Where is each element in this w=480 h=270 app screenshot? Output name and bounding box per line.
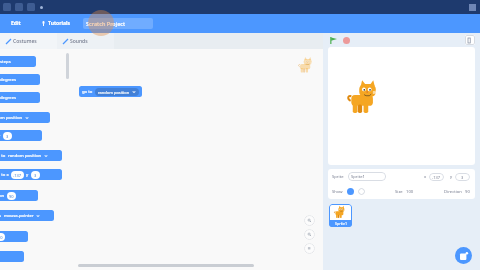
button[interactable]: Edit bbox=[8, 17, 24, 30]
staticText: steps bbox=[0, 59, 11, 65]
button[interactable]: wards bbox=[0, 210, 54, 221]
staticText: Scratch Project bbox=[86, 20, 126, 27]
staticText: random position bbox=[8, 153, 42, 159]
staticText: random position bbox=[0, 115, 23, 121]
staticText: go to bbox=[82, 89, 93, 95]
staticText: Tutorials bbox=[48, 20, 70, 27]
staticText: Sprite bbox=[332, 174, 344, 180]
button[interactable]: Stop bbox=[343, 37, 350, 44]
button[interactable]: -137 bbox=[0, 251, 24, 262]
staticText: Edit bbox=[11, 20, 21, 27]
staticText: irection bbox=[0, 193, 5, 199]
button[interactable]: 15 bbox=[0, 92, 40, 103]
button[interactable]: Tool 1 bbox=[15, 3, 23, 11]
button[interactable]: ove to bbox=[0, 150, 62, 161]
staticText: degrees bbox=[0, 95, 17, 101]
button[interactable]: Reset zoom bbox=[304, 243, 315, 254]
button[interactable]: Hide sprite bbox=[358, 188, 365, 195]
button[interactable]: Choose a Sprite bbox=[455, 247, 472, 264]
button[interactable]: Scratch Project bbox=[83, 18, 153, 29]
button[interactable]: Sprite1 bbox=[348, 172, 386, 181]
staticText: y bbox=[0, 133, 1, 139]
staticText: x bbox=[424, 174, 427, 180]
button[interactable]: ove to x bbox=[0, 169, 62, 180]
button[interactable]: Tool 2 bbox=[27, 3, 35, 11]
staticText: 90 bbox=[9, 194, 14, 199]
staticText: 90 bbox=[465, 189, 470, 195]
button[interactable]: -137 bbox=[429, 173, 444, 181]
staticText: Costumes bbox=[13, 38, 37, 45]
staticText: 10 bbox=[0, 235, 3, 240]
button[interactable]: 10 bbox=[0, 56, 36, 67]
button[interactable]: 3 bbox=[455, 173, 470, 181]
staticText: 3 bbox=[461, 175, 464, 180]
button[interactable]: irection bbox=[0, 190, 38, 201]
staticText: -137 bbox=[432, 175, 441, 180]
staticText: Size bbox=[395, 189, 403, 195]
staticText: 100 bbox=[406, 189, 414, 195]
button[interactable]: Zoom out bbox=[304, 229, 315, 240]
button[interactable]: Sprite1 bbox=[329, 204, 352, 227]
staticText: Sounds bbox=[70, 38, 88, 45]
button[interactable]: Full screen bbox=[465, 35, 475, 45]
button[interactable]: 15 bbox=[0, 74, 40, 85]
button[interactable]: -137 bbox=[0, 130, 42, 141]
staticText: ove to bbox=[0, 153, 6, 159]
button[interactable]: Go bbox=[329, 36, 338, 45]
staticText: 3 bbox=[6, 134, 9, 139]
staticText: ove to x bbox=[0, 172, 9, 178]
button[interactable]: Costumes bbox=[0, 33, 57, 49]
staticText: Sprite1 bbox=[335, 221, 347, 226]
staticText: y bbox=[26, 172, 29, 178]
staticText: wards bbox=[0, 213, 2, 219]
staticText: 3 bbox=[34, 173, 37, 178]
staticText: -137 bbox=[13, 173, 22, 178]
staticText: degrees bbox=[0, 77, 17, 83]
button[interactable]: random position bbox=[0, 112, 50, 123]
staticText: random position bbox=[98, 90, 130, 95]
button[interactable]: Sounds bbox=[57, 33, 114, 49]
button[interactable]: go to bbox=[79, 86, 142, 97]
button[interactable]: Tutorials bbox=[38, 17, 73, 30]
staticText: mouse-pointer bbox=[4, 213, 34, 219]
button[interactable]: by bbox=[0, 231, 28, 242]
staticText: Direction bbox=[444, 189, 462, 195]
button[interactable]: Zoom in bbox=[304, 215, 315, 226]
staticText: Sprite1 bbox=[351, 174, 365, 180]
staticText: Show bbox=[332, 189, 343, 195]
button[interactable]: Tool 0 bbox=[3, 3, 11, 11]
staticText: y bbox=[450, 174, 453, 180]
button[interactable]: Show sprite bbox=[347, 188, 354, 195]
